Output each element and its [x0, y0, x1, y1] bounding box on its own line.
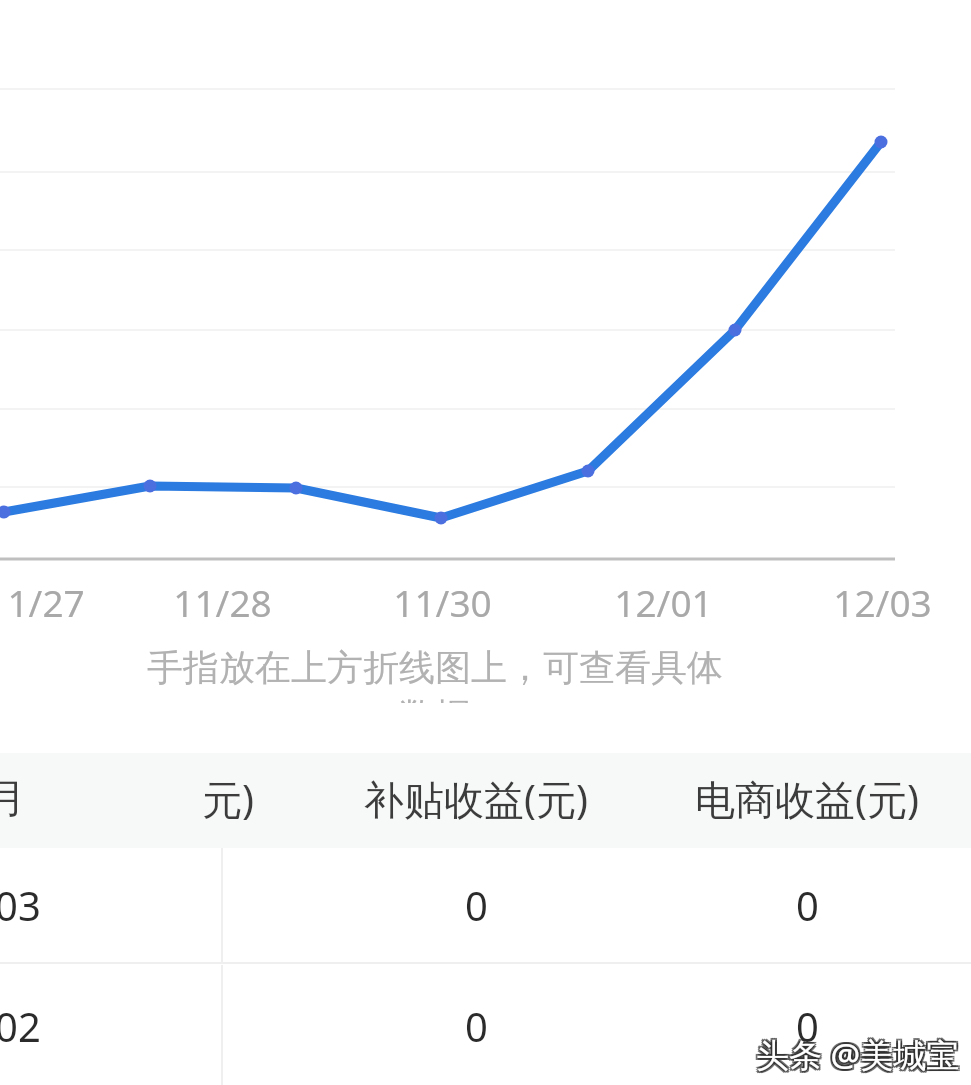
staticText: 月 [0, 773, 26, 823]
staticText: 12/01 [614, 577, 713, 627]
staticText: 12/03 [833, 577, 932, 627]
button[interactable] [0, 848, 971, 962]
staticText: 0 [796, 999, 819, 1053]
staticText: 头条 @美城宝鸡 [754, 1032, 960, 1076]
staticText: 头条 @美城宝鸡 [754, 1030, 960, 1074]
staticText: 11/27 [0, 577, 85, 627]
staticText: 元) [202, 771, 254, 826]
staticText: 0 [796, 878, 819, 932]
staticText: 11/28 [173, 577, 272, 627]
staticText: 电商收益(元) [695, 771, 919, 826]
staticText: 头条 @美城宝鸡 [756, 1034, 962, 1078]
staticText: 头条 @美城宝鸡 [754, 1034, 960, 1078]
staticText: 头条 @美城宝鸡 [758, 1032, 964, 1076]
staticText: 0 [465, 878, 488, 932]
staticText: 03 [0, 878, 41, 932]
staticText: 0 [465, 999, 488, 1053]
button[interactable] [0, 964, 971, 1085]
staticText: 头条 @美城宝鸡 [756, 1032, 962, 1076]
staticText: 补贴收益(元) [364, 771, 588, 826]
staticText: 11/30 [393, 577, 492, 627]
staticText: 手指放在上方折线图上，可查看具体数据 [135, 645, 735, 703]
staticText: 头条 @美城宝鸡 [758, 1030, 964, 1074]
button[interactable]: 手指放在上方折线图上，可查看具体数据 [135, 645, 735, 703]
staticText: 头条 @美城宝鸡 [756, 1030, 962, 1074]
staticText: 头条 @美城宝鸡 [758, 1034, 964, 1078]
staticText: 02 [0, 999, 41, 1053]
